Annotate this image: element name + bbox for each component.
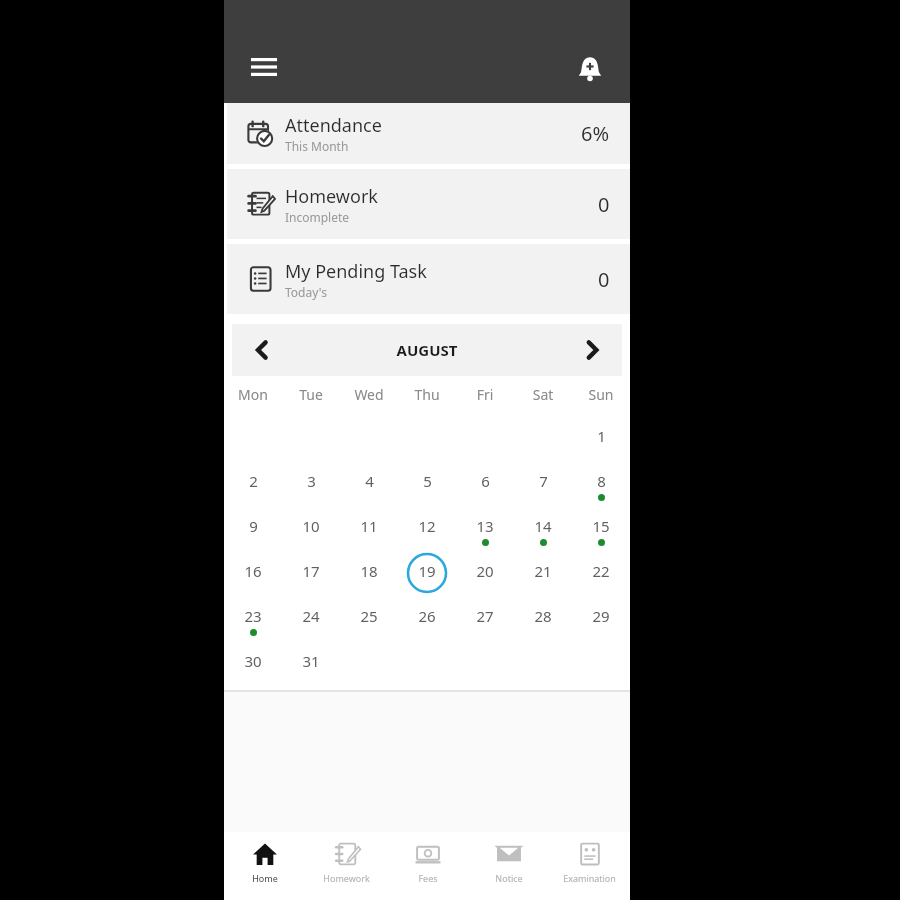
staticText: Examination — [563, 872, 616, 884]
staticText: Tue — [282, 385, 340, 404]
button[interactable]: 31 — [282, 637, 340, 682]
button[interactable]: 6 — [456, 457, 514, 502]
button[interactable]: Attendance — [227, 103, 630, 164]
staticText: My Pending Task — [285, 259, 427, 284]
button[interactable]: 17 — [282, 547, 340, 592]
button[interactable]: Next month — [562, 324, 622, 376]
button[interactable]: 3 — [282, 457, 340, 502]
staticText: Thu — [398, 385, 456, 404]
staticText: 14 — [534, 516, 552, 536]
button[interactable]: 30 — [224, 637, 282, 682]
staticText: 18 — [360, 561, 378, 581]
button[interactable]: 28 — [514, 592, 572, 637]
button[interactable]: 25 — [340, 592, 398, 637]
staticText: This Month — [285, 138, 349, 154]
staticText: 12 — [418, 516, 436, 536]
button[interactable]: 16 — [224, 547, 282, 592]
button[interactable]: 11 — [340, 502, 398, 547]
button[interactable]: Menu — [244, 47, 284, 87]
button[interactable]: 24 — [282, 592, 340, 637]
staticText: Sun — [572, 385, 630, 404]
staticText: 24 — [302, 606, 320, 626]
staticText: 22 — [592, 561, 610, 581]
staticText: Mon — [224, 385, 282, 404]
staticText: 16 — [244, 561, 262, 581]
button[interactable]: Examination — [549, 832, 630, 900]
staticText: 31 — [302, 651, 320, 671]
button[interactable]: 22 — [572, 547, 630, 592]
staticText: 5 — [423, 471, 432, 491]
staticText: Fri — [456, 385, 514, 404]
staticText: 2 — [249, 471, 258, 491]
staticText: Home — [252, 872, 278, 884]
button[interactable]: Homework — [306, 832, 387, 900]
staticText: Today's — [285, 284, 327, 300]
staticText: 23 — [244, 606, 262, 626]
staticText: 0 — [598, 266, 610, 293]
staticText: Wed — [340, 385, 398, 404]
button[interactable]: 15 — [572, 502, 630, 547]
button[interactable]: Fees — [387, 832, 468, 900]
button[interactable]: 2 — [224, 457, 282, 502]
button[interactable]: 7 — [514, 457, 572, 502]
button[interactable]: 29 — [572, 592, 630, 637]
staticText: Fees — [418, 872, 438, 884]
staticText: 4 — [365, 471, 374, 491]
staticText: 21 — [534, 561, 552, 581]
staticText: 30 — [244, 651, 262, 671]
button[interactable]: Homework — [227, 169, 630, 239]
staticText: 29 — [592, 606, 610, 626]
staticText: Sat — [514, 385, 572, 404]
button[interactable]: Home — [224, 832, 306, 900]
staticText: 17 — [302, 561, 320, 581]
staticText: 1 — [597, 426, 606, 446]
staticText: 6% — [581, 120, 610, 147]
button[interactable]: 12 — [398, 502, 456, 547]
button[interactable]: 19 — [398, 547, 456, 592]
button[interactable]: 8 — [572, 457, 630, 502]
button[interactable]: 26 — [398, 592, 456, 637]
button[interactable]: 20 — [456, 547, 514, 592]
staticText: 11 — [360, 516, 378, 536]
button[interactable]: 10 — [282, 502, 340, 547]
button[interactable]: 4 — [340, 457, 398, 502]
staticText: 6 — [481, 471, 490, 491]
staticText: 15 — [592, 516, 610, 536]
button[interactable]: 21 — [514, 547, 572, 592]
staticText: 20 — [476, 561, 494, 581]
staticText: 25 — [360, 606, 378, 626]
staticText: 9 — [249, 516, 258, 536]
button[interactable]: 23 — [224, 592, 282, 637]
staticText: 3 — [307, 471, 316, 491]
staticText: 13 — [476, 516, 494, 536]
button[interactable]: 1 — [572, 412, 630, 457]
staticText: Homework — [285, 184, 378, 209]
button[interactable]: Previous month — [232, 324, 292, 376]
button[interactable]: 9 — [224, 502, 282, 547]
staticText: 26 — [418, 606, 436, 626]
staticText: Homework — [323, 872, 370, 884]
button[interactable]: My Pending Task — [227, 244, 630, 314]
staticText: 8 — [597, 471, 606, 491]
button[interactable]: 14 — [514, 502, 572, 547]
button[interactable]: 27 — [456, 592, 514, 637]
staticText: 10 — [302, 516, 320, 536]
button[interactable]: Notice — [468, 832, 549, 900]
staticText: 19 — [418, 561, 436, 581]
staticText: 28 — [534, 606, 552, 626]
staticText: 0 — [598, 191, 610, 218]
staticText: Attendance — [285, 113, 382, 138]
button[interactable]: 18 — [340, 547, 398, 592]
button[interactable]: 5 — [398, 457, 456, 502]
button[interactable]: 13 — [456, 502, 514, 547]
staticText: AUGUST — [292, 340, 562, 360]
staticText: Incomplete — [285, 209, 350, 225]
staticText: Notice — [495, 872, 523, 884]
staticText: 7 — [539, 471, 548, 491]
button[interactable]: Add notification — [568, 47, 612, 91]
staticText: 27 — [476, 606, 494, 626]
